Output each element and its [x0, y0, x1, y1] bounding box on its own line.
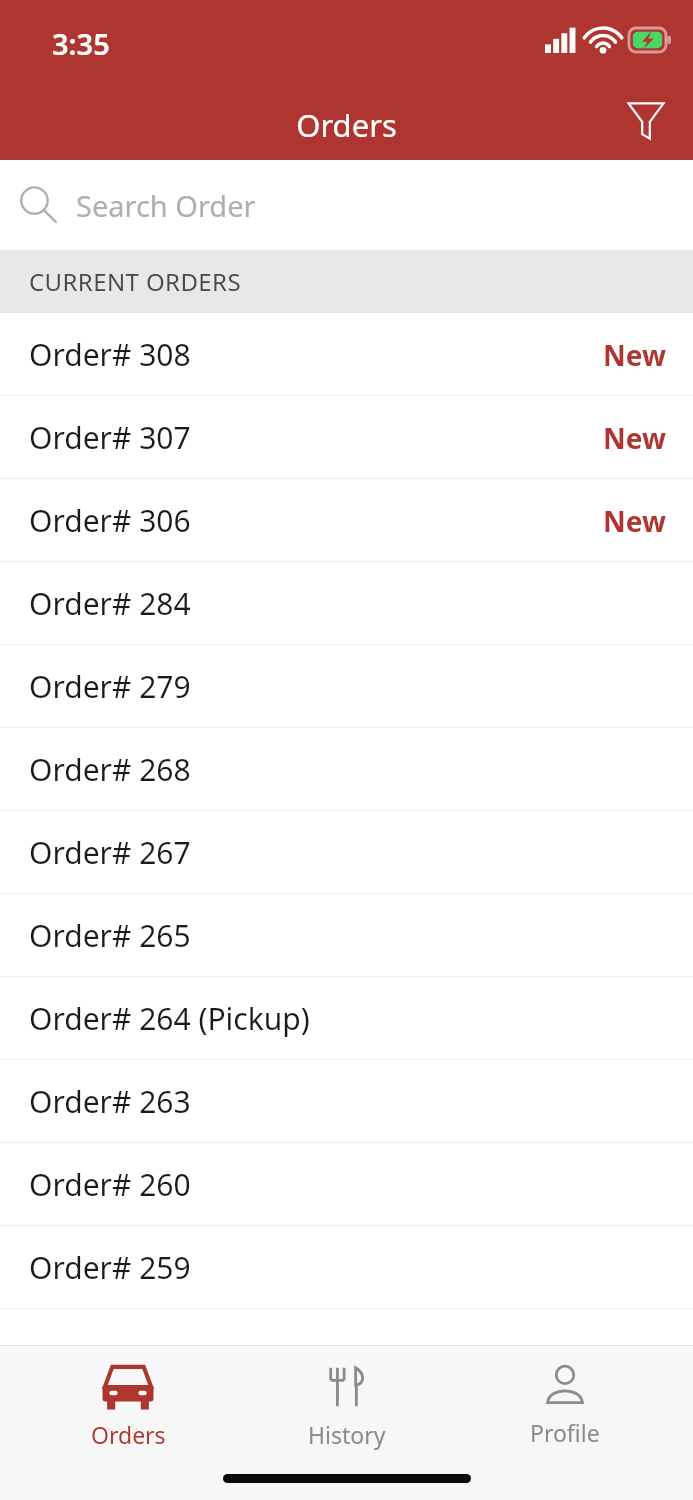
- staticText: 3:35: [52, 24, 110, 63]
- staticText: Orders: [91, 1419, 166, 1450]
- staticText: CURRENT ORDERS: [29, 265, 241, 298]
- staticText: Order# 267: [29, 832, 191, 873]
- button[interactable]: Orders: [38, 1359, 218, 1454]
- button[interactable]: Filter: [613, 88, 679, 154]
- button[interactable]: Order# 263: [0, 1060, 693, 1143]
- staticText: Order# 268: [29, 749, 191, 790]
- button[interactable]: Order# 260: [0, 1143, 693, 1226]
- button[interactable]: Order# 267: [0, 811, 693, 894]
- button[interactable]: Order# 265: [0, 894, 693, 977]
- button[interactable]: Search Order: [0, 160, 693, 250]
- staticText: Order# 307: [29, 417, 191, 458]
- staticText: Order# 284: [29, 583, 191, 624]
- button[interactable]: Order# 284: [0, 562, 693, 645]
- staticText: Order# 260: [29, 1164, 191, 1205]
- button[interactable]: Order# 307: [0, 396, 693, 479]
- staticText: Order# 259: [29, 1247, 191, 1288]
- button[interactable]: Order# 308: [0, 313, 693, 396]
- staticText: Order# 308: [29, 334, 191, 375]
- staticText: Order# 263: [29, 1081, 191, 1122]
- button[interactable]: Order# 306: [0, 479, 693, 562]
- staticText: Order# 264 (Pickup): [29, 998, 310, 1039]
- staticText: Order# 279: [29, 666, 191, 707]
- staticText: Order# 265: [29, 915, 191, 956]
- staticText: Profile: [530, 1417, 600, 1448]
- staticText: New: [603, 419, 666, 457]
- button[interactable]: Order# 268: [0, 728, 693, 811]
- staticText: Order# 306: [29, 500, 191, 541]
- staticText: History: [308, 1419, 386, 1450]
- button[interactable]: Order# 279: [0, 645, 693, 728]
- button[interactable]: History: [257, 1359, 437, 1454]
- button[interactable]: Profile: [475, 1359, 655, 1452]
- staticText: New: [603, 502, 666, 540]
- button[interactable]: Order# 264 (Pickup): [0, 977, 693, 1060]
- staticText: Orders: [296, 104, 397, 146]
- staticText: Search Order: [76, 186, 256, 225]
- button[interactable]: Order# 259: [0, 1226, 693, 1309]
- staticText: New: [603, 336, 666, 374]
